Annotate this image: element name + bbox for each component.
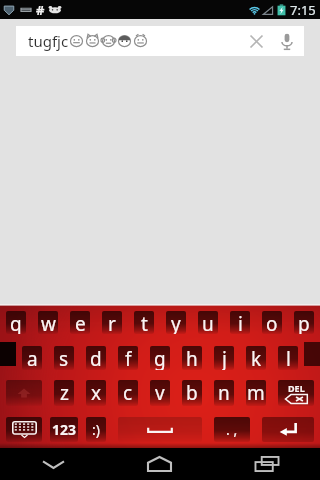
button[interactable]: a <box>16 346 48 370</box>
button[interactable]: p <box>288 304 320 341</box>
staticText: 7:15 <box>290 1 316 19</box>
button[interactable]: Hide keyboard <box>0 417 48 442</box>
button[interactable]: i <box>224 304 256 341</box>
button[interactable]: f <box>112 346 144 370</box>
staticText: s <box>59 346 69 370</box>
staticText: a <box>27 346 38 370</box>
button[interactable]: y <box>160 304 192 341</box>
staticText: :) <box>92 420 100 439</box>
button[interactable]: t <box>128 304 160 341</box>
button[interactable]: Delete <box>272 380 320 406</box>
staticText: c <box>123 380 133 406</box>
staticText: z <box>60 380 69 406</box>
staticText: t <box>141 311 148 334</box>
staticText: o <box>266 311 278 334</box>
button[interactable]: g <box>144 346 176 370</box>
button[interactable]: n <box>208 380 240 406</box>
button[interactable]: q <box>0 304 32 341</box>
button[interactable]: Recent apps <box>213 448 320 480</box>
staticText: l <box>286 346 291 370</box>
staticText: b <box>186 380 198 406</box>
button[interactable]: c <box>112 380 144 406</box>
staticText: r <box>108 311 116 334</box>
staticText: w <box>41 311 56 334</box>
staticText: x <box>91 380 102 406</box>
button[interactable]: o <box>256 304 288 341</box>
button[interactable]: m <box>240 380 272 406</box>
staticText: k <box>251 346 262 370</box>
staticText: v <box>155 380 165 406</box>
button[interactable]: j <box>208 346 240 370</box>
staticText: i <box>238 311 243 334</box>
staticText: f <box>125 346 132 370</box>
button[interactable]: 123 <box>48 417 80 442</box>
button[interactable]: s <box>48 346 80 370</box>
button[interactable]: Shift <box>0 380 48 406</box>
button[interactable]: u <box>192 304 224 341</box>
button[interactable]: Space <box>112 417 208 442</box>
button[interactable]: l <box>272 346 304 370</box>
button[interactable]: h <box>176 346 208 370</box>
staticText: # <box>36 1 45 19</box>
button[interactable]: tugfjc <box>16 26 304 56</box>
button[interactable]: b <box>176 380 208 406</box>
staticText: q <box>10 311 22 334</box>
button[interactable]: z <box>48 380 80 406</box>
staticText: . , <box>226 420 238 439</box>
staticText: tugfjc <box>28 31 69 51</box>
staticText: u <box>202 311 214 334</box>
button[interactable]: v <box>144 380 176 406</box>
button[interactable]: Home <box>106 448 213 480</box>
button[interactable]: Enter <box>256 417 320 442</box>
button[interactable]: Back <box>0 448 106 480</box>
button[interactable]: . , <box>208 417 256 442</box>
staticText: 123 <box>52 420 77 439</box>
button[interactable]: e <box>64 304 96 341</box>
staticText: e <box>75 311 86 334</box>
button[interactable]: Voice search <box>272 26 302 56</box>
staticText: n <box>218 380 230 406</box>
button[interactable]: d <box>80 346 112 370</box>
button[interactable]: x <box>80 380 112 406</box>
button[interactable]: w <box>32 304 64 341</box>
button[interactable]: r <box>96 304 128 341</box>
staticText: y <box>171 311 181 334</box>
staticText: d <box>90 346 102 370</box>
button[interactable]: Clear query <box>240 26 272 56</box>
staticText: g <box>154 346 166 370</box>
button[interactable]: k <box>240 346 272 370</box>
button[interactable]: :) <box>80 417 112 442</box>
staticText: p <box>298 311 310 334</box>
staticText: h <box>186 346 198 370</box>
staticText: m <box>247 380 265 406</box>
staticText: DEL <box>288 382 305 394</box>
staticText: j <box>222 346 227 370</box>
